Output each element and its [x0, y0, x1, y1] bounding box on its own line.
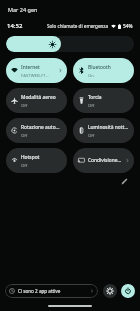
button[interactable]: Ci sono 2 app attive — [5, 284, 98, 298]
button[interactable]: Internet — [6, 58, 67, 83]
button[interactable]: Impostazioni — [103, 284, 117, 298]
staticText: Bluetooth — [88, 64, 111, 71]
staticText: Off — [21, 162, 28, 168]
staticText: Modalità aereo — [21, 94, 56, 101]
staticText: Luminosità nott... — [88, 124, 129, 131]
staticText: Mar 24 gen — [8, 6, 38, 13]
staticText: On — [88, 72, 95, 78]
staticText: 54% — [123, 23, 133, 30]
staticText: Off — [21, 132, 28, 138]
staticText: FASTWEB-F1... — [21, 72, 50, 78]
staticText: 14:52 — [7, 22, 23, 30]
staticText: Condivisione... — [88, 157, 122, 164]
staticText: Off — [88, 132, 95, 138]
button[interactable]: Bluetooth — [73, 58, 134, 83]
staticText: Solo chiamate di emergenza — [47, 23, 109, 29]
staticText: Rotazione auto... — [21, 124, 60, 131]
staticText: Ci sono 2 app attive — [18, 288, 61, 294]
button[interactable]: Torcia — [73, 88, 134, 113]
button[interactable]: Spegni — [121, 284, 135, 298]
button[interactable]: Modalità aereo — [6, 88, 67, 113]
staticText: Off — [88, 102, 95, 108]
button[interactable]: Rotazione auto... — [6, 118, 67, 143]
button[interactable]: Luminosità — [6, 36, 134, 52]
staticText: Off — [21, 102, 28, 108]
button[interactable]: Hotspot — [6, 148, 67, 173]
button[interactable]: Condivisione... — [73, 148, 134, 173]
staticText: Hotspot — [21, 154, 40, 161]
button[interactable]: Modifica riquadri — [118, 175, 131, 188]
button[interactable]: Luminosità nott... — [73, 118, 134, 143]
staticText: Torcia — [88, 94, 102, 101]
staticText: Internet — [21, 64, 40, 71]
